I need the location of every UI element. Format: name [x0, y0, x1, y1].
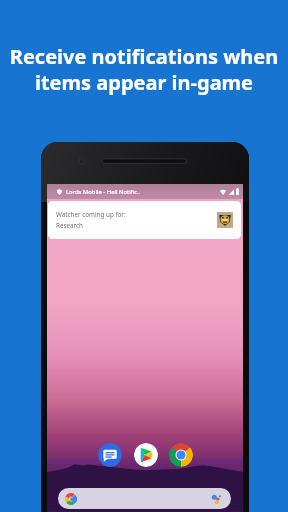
staticText: Watcher coming up for:	[56, 210, 126, 219]
button[interactable]: Search	[58, 488, 231, 509]
staticText: Receive notifications when items appear …	[8, 43, 280, 96]
button[interactable]: Chrome	[169, 443, 193, 467]
button[interactable]: Messages	[98, 443, 122, 467]
button[interactable]: Play Store	[134, 443, 158, 467]
button[interactable]: Watcher coming up for:	[48, 201, 241, 239]
staticText: Research	[56, 221, 83, 230]
staticText: Lords Mobile - Hell Notific..	[66, 188, 141, 196]
